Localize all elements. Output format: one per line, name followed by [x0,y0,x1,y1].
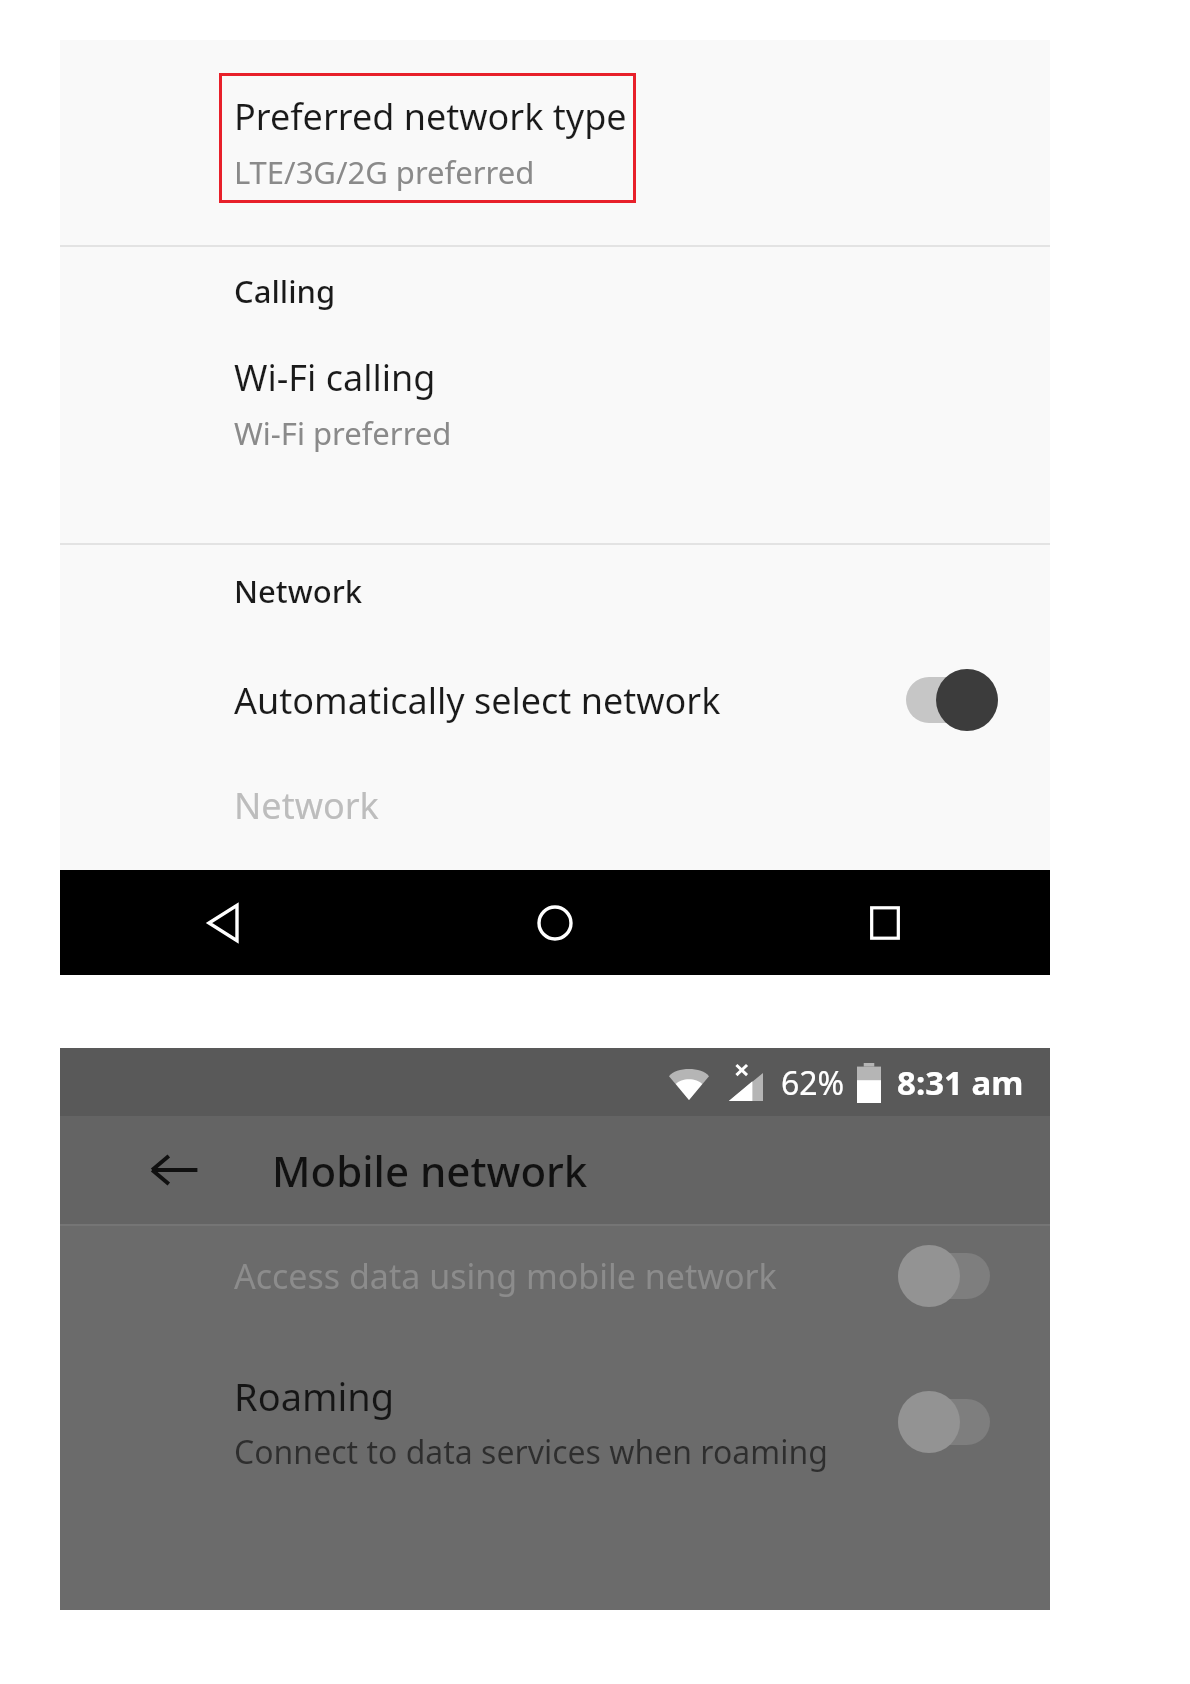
staticText: Preferred network type [234,92,627,141]
button[interactable]: Automatically select network [60,637,1050,763]
staticText: Wi-Fi preferred [234,412,452,454]
button[interactable]: Back [60,870,390,975]
staticText: Wi-Fi calling [234,353,436,402]
staticText: Network [234,781,379,830]
button[interactable]: Wi-Fi calling [60,335,1050,543]
staticText: LTE/3G/2G preferred [234,151,535,193]
staticText: Network [234,570,363,612]
staticText: Roaming [234,1370,395,1422]
button[interactable]: Preferred network type [60,40,1050,245]
staticText: 8:31 am [897,1060,1024,1105]
staticText: Automatically select network [234,676,898,725]
button[interactable]: Access data using mobile network [60,1226,1050,1326]
staticText: Mobile network [272,1142,588,1199]
staticText: Connect to data services when roaming [234,1430,828,1474]
button[interactable]: Back [138,1134,210,1206]
button[interactable]: Roaming [60,1370,1050,1474]
staticText: Access data using mobile network [234,1253,898,1299]
staticText: 62% [781,1061,845,1105]
button[interactable]: Recents [720,870,1050,975]
staticText: Calling [234,270,336,312]
button[interactable]: Home [390,870,720,975]
